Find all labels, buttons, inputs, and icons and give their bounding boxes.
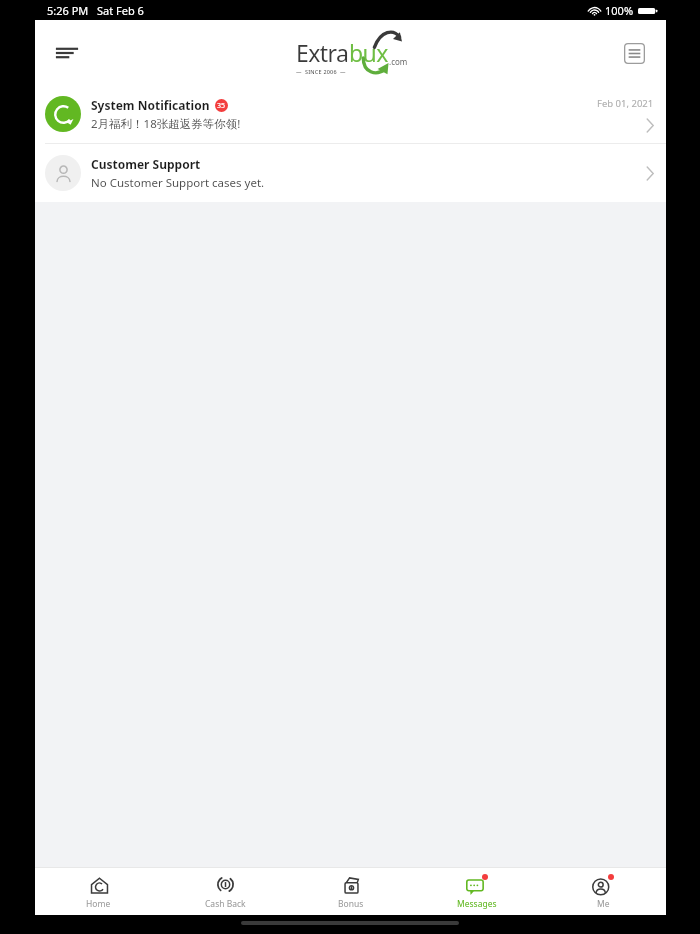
staticText: bux: [349, 37, 388, 68]
staticText: — SINCE 2006 —: [296, 68, 346, 75]
staticText: 2月福利！18张超返券等你领!: [91, 116, 241, 132]
button[interactable]: List options: [614, 33, 654, 73]
button[interactable]: Customer Support: [35, 144, 666, 202]
staticText: Feb 01, 2021: [597, 97, 654, 110]
button[interactable]: Me: [540, 868, 666, 915]
button[interactable]: Messages: [414, 868, 540, 915]
staticText: Sat Feb 6: [97, 3, 144, 18]
staticText: 35: [217, 101, 226, 111]
staticText: .com: [389, 56, 408, 67]
staticText: Bonus: [338, 898, 364, 910]
staticText: Home: [86, 898, 111, 910]
button[interactable]: Home: [35, 868, 162, 915]
staticText: 5:26 PM: [47, 3, 89, 18]
staticText: No Customer Support cases yet.: [91, 175, 265, 191]
staticText: Me: [597, 898, 610, 910]
staticText: Cash Back: [205, 898, 246, 910]
staticText: Customer Support: [91, 156, 201, 172]
staticText: Messages: [457, 898, 497, 910]
staticText: System Notification: [91, 97, 210, 113]
staticText: Extra: [296, 37, 349, 68]
button[interactable]: Bonus: [288, 868, 414, 915]
button[interactable]: Cash Back: [162, 868, 288, 915]
button[interactable]: System Notification: [35, 85, 666, 143]
staticText: 100%: [605, 3, 634, 18]
button[interactable]: Menu: [45, 31, 89, 75]
